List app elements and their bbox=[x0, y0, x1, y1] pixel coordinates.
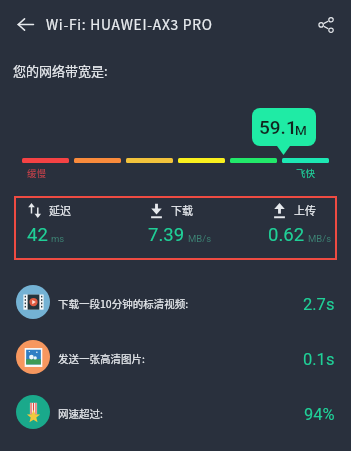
staticText: 2.7s bbox=[303, 295, 335, 314]
staticText: 缓慢 bbox=[27, 166, 47, 180]
staticText: M bbox=[295, 122, 307, 138]
staticText: 下载 bbox=[171, 202, 193, 218]
staticText: 飞快 bbox=[296, 166, 316, 180]
button[interactable]: 网速超过: bbox=[0, 387, 351, 437]
staticText: 7.39 bbox=[148, 224, 185, 246]
staticText: 网速超过: bbox=[58, 406, 103, 421]
staticText: MB/s bbox=[308, 233, 332, 244]
staticText: 0.62 bbox=[268, 224, 305, 246]
staticText: 42 bbox=[27, 224, 48, 246]
staticText: 延迟 bbox=[49, 202, 71, 218]
button[interactable]: Share bbox=[306, 5, 344, 43]
staticText: 上传 bbox=[294, 202, 316, 218]
staticText: 94% bbox=[304, 405, 335, 424]
button[interactable]: Back bbox=[6, 5, 44, 43]
staticText: ms bbox=[51, 233, 65, 244]
staticText: MB/s bbox=[188, 233, 212, 244]
staticText: 发送一张高清图片: bbox=[58, 351, 145, 366]
staticText: 59.1 bbox=[259, 116, 297, 138]
staticText: 您的网络带宽是: bbox=[13, 61, 108, 80]
button[interactable]: 下载一段10分钟的标清视频: bbox=[0, 277, 351, 327]
button[interactable]: 发送一张高清图片: bbox=[0, 332, 351, 382]
staticText: Wi-Fi: HUAWEI-AX3 PRO bbox=[46, 14, 213, 34]
staticText: 0.1s bbox=[303, 350, 335, 369]
staticText: 下载一段10分钟的标清视频: bbox=[58, 296, 189, 311]
